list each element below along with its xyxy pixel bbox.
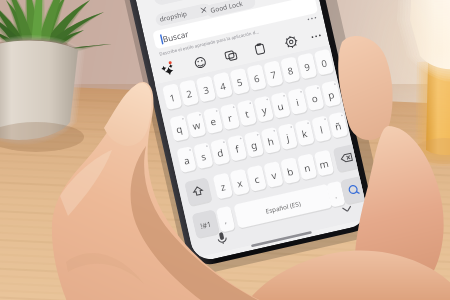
button[interactable] — [0, 0, 450, 300]
